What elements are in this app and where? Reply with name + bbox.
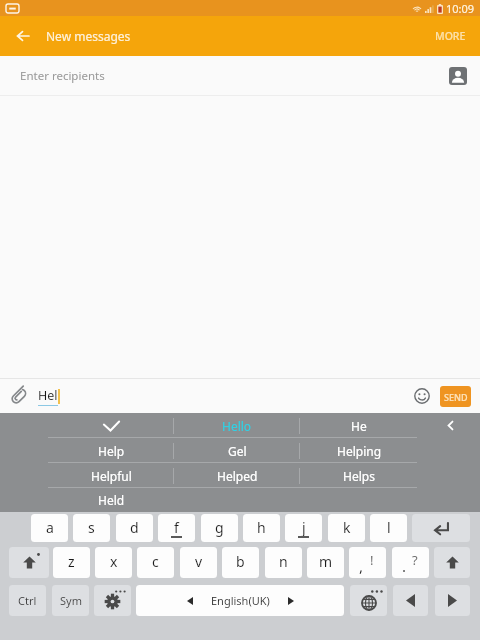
button[interactable]: c	[137, 547, 174, 578]
button[interactable]: Enter	[412, 514, 470, 542]
button[interactable]: Held	[48, 488, 174, 512]
staticText: SEND	[444, 391, 468, 403]
staticText: Ctrl	[18, 593, 37, 608]
button[interactable]: n	[265, 547, 302, 578]
button[interactable]: Hide suggestions	[418, 413, 480, 438]
button[interactable]	[48, 413, 174, 438]
staticText: g	[215, 518, 224, 537]
button[interactable]: g	[201, 514, 238, 542]
staticText: j	[302, 518, 306, 537]
button[interactable]: a	[31, 514, 68, 542]
staticText: k	[343, 518, 351, 537]
button[interactable]: .	[392, 547, 429, 578]
staticText: 10:09	[446, 1, 475, 16]
button[interactable]: Ctrl	[9, 585, 46, 616]
button[interactable]: He	[300, 413, 418, 438]
staticText: v	[195, 552, 203, 571]
button[interactable]: Attach file	[5, 382, 33, 410]
button[interactable]: Helps	[300, 463, 418, 488]
staticText: n	[279, 552, 288, 571]
button[interactable]: MORE	[421, 16, 480, 56]
button[interactable]: Space, English(UK)	[136, 585, 344, 616]
button[interactable]: Helped	[174, 463, 300, 488]
button[interactable]: d	[116, 514, 153, 542]
button[interactable]: Shift	[9, 547, 49, 578]
button[interactable]: Change language	[350, 585, 387, 616]
button[interactable]: m	[307, 547, 344, 578]
button[interactable]: Helpful	[48, 463, 174, 488]
staticText: Helping	[337, 443, 382, 459]
button[interactable]: z	[53, 547, 90, 578]
staticText: l	[387, 518, 391, 537]
staticText: ,	[359, 556, 364, 576]
staticText: English(UK)	[211, 593, 270, 608]
button[interactable]: SEND	[440, 386, 471, 407]
button[interactable]: Gel	[174, 438, 300, 463]
staticText: !	[370, 551, 374, 569]
button[interactable]: Hello	[174, 413, 300, 438]
staticText: h	[257, 518, 266, 537]
staticText: Sym	[60, 593, 82, 608]
button[interactable]: Sym	[52, 585, 89, 616]
button[interactable]: v	[180, 547, 217, 578]
button[interactable]: Help	[48, 438, 174, 463]
staticText: Hel	[38, 387, 58, 404]
staticText: a	[46, 518, 54, 537]
staticText: ?	[412, 551, 418, 569]
staticText: f	[174, 518, 179, 537]
staticText: Helps	[343, 468, 375, 484]
staticText: Hello	[222, 418, 252, 434]
button[interactable]: Emoji	[414, 388, 430, 404]
button[interactable]: Settings	[94, 585, 131, 616]
button[interactable]: x	[95, 547, 132, 578]
staticText: m	[319, 552, 333, 571]
button[interactable]: h	[243, 514, 280, 542]
staticText: Helped	[217, 468, 258, 484]
staticText: He	[351, 418, 367, 434]
button[interactable]: ,	[349, 547, 386, 578]
button[interactable]: k	[328, 514, 365, 542]
button[interactable]: Add recipient from contacts	[444, 62, 472, 90]
staticText: z	[68, 552, 75, 571]
button[interactable]: l	[370, 514, 407, 542]
staticText: Held	[98, 492, 125, 508]
button[interactable]: Cursor left	[393, 585, 428, 616]
staticText: Gel	[228, 443, 247, 459]
staticText: .	[402, 556, 407, 576]
button[interactable]: j	[285, 514, 322, 542]
staticText: d	[130, 518, 139, 537]
button[interactable]: Shift	[434, 547, 470, 578]
staticText: Help	[98, 443, 125, 459]
button[interactable]: s	[73, 514, 110, 542]
button[interactable]: Cursor right	[435, 585, 470, 616]
staticText: s	[88, 518, 95, 537]
staticText: Helpful	[91, 468, 132, 484]
button[interactable]: f	[158, 514, 195, 542]
staticText: b	[236, 552, 245, 571]
button[interactable]: Back	[0, 16, 46, 56]
staticText: x	[110, 552, 118, 571]
button[interactable]: b	[222, 547, 259, 578]
staticText: MORE	[435, 29, 466, 43]
staticText: c	[152, 552, 159, 571]
button[interactable]: Helping	[300, 438, 418, 463]
staticText: New messages	[46, 28, 131, 44]
staticText: Enter recipients	[20, 68, 105, 84]
